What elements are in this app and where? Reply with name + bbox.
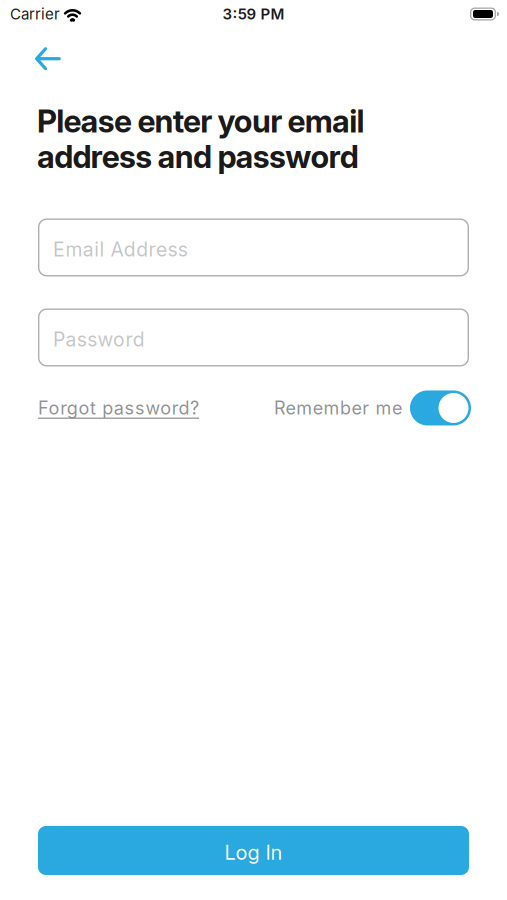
staticText: Email Address xyxy=(53,238,188,261)
button[interactable]: Forgot password? xyxy=(38,397,199,419)
staticText: Password xyxy=(53,328,145,351)
button[interactable]: Log In xyxy=(38,826,469,875)
staticText: 3:59 PM xyxy=(222,5,284,23)
staticText: Carrier xyxy=(10,5,60,23)
staticText: Forgot password? xyxy=(38,397,199,419)
button[interactable]: Remember me xyxy=(274,390,471,425)
staticText: Please enter your email address and pass… xyxy=(37,103,364,174)
staticText: Remember me xyxy=(274,397,402,419)
staticText: Log In xyxy=(224,840,282,865)
button[interactable]: Back xyxy=(0,28,60,70)
